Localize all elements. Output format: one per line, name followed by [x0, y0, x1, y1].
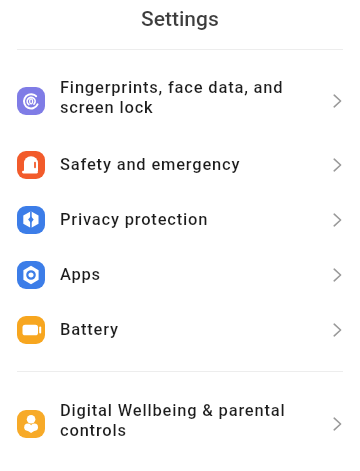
button[interactable]: Battery: [0, 302, 360, 357]
staticText: Privacy protection: [60, 210, 209, 229]
staticText: Fingerprints, face data, and screen lock: [60, 78, 284, 117]
button[interactable]: Fingerprints, face data, and screen lock: [0, 64, 360, 137]
button[interactable]: Safety and emergency: [0, 137, 360, 192]
staticText: Digital Wellbeing & parental controls: [60, 401, 286, 440]
button[interactable]: Privacy protection: [0, 192, 360, 247]
button[interactable]: Apps: [0, 247, 360, 302]
button[interactable]: Digital Wellbeing & parental controls: [0, 387, 360, 460]
staticText: Apps: [60, 265, 101, 284]
staticText: Settings: [141, 7, 219, 32]
staticText: Safety and emergency: [60, 155, 241, 174]
staticText: Battery: [60, 320, 119, 339]
